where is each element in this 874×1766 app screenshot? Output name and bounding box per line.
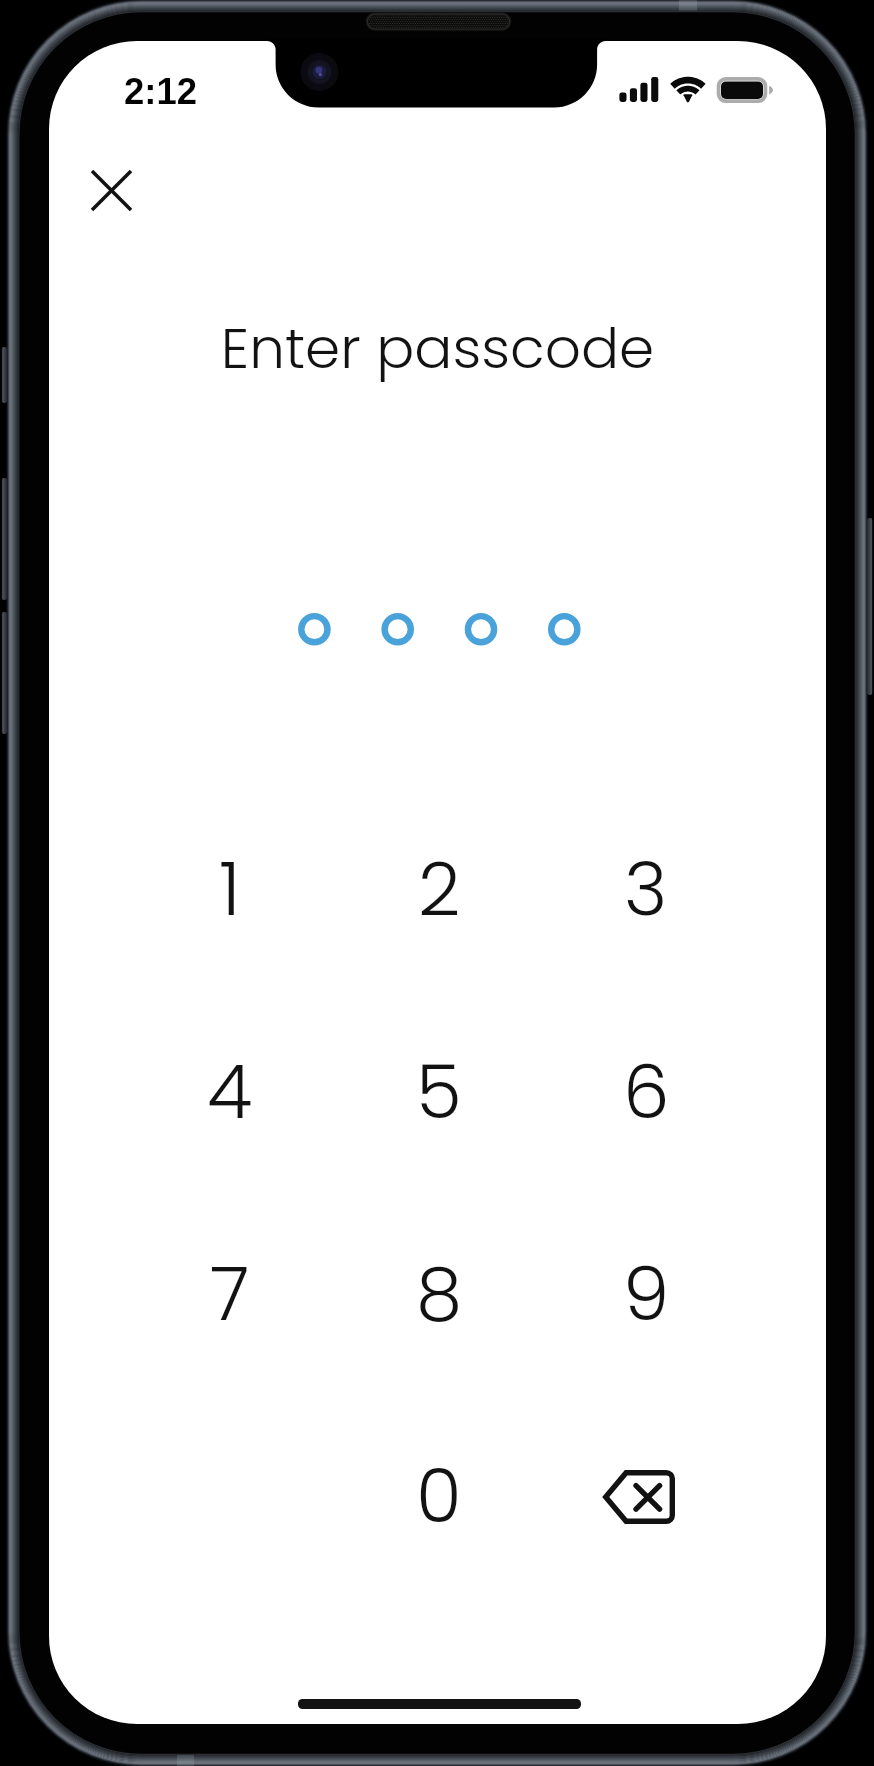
button[interactable]: 7 [164, 1228, 296, 1360]
staticText: 2 [418, 837, 461, 941]
button[interactable]: 3 [580, 823, 712, 955]
button[interactable]: Backspace [580, 1430, 712, 1562]
staticText: Enter passcode [49, 309, 826, 388]
staticText: 1 [219, 837, 241, 941]
button[interactable]: 6 [580, 1026, 712, 1158]
button[interactable]: 8 [373, 1228, 505, 1360]
button[interactable]: 0 [373, 1430, 505, 1562]
staticText: 9 [623, 1242, 670, 1346]
button[interactable]: 5 [373, 1026, 505, 1158]
button[interactable]: 9 [580, 1228, 712, 1360]
button[interactable]: 4 [164, 1026, 296, 1158]
staticText: 2:12 [124, 71, 198, 112]
staticText: 7 [210, 1242, 250, 1346]
staticText: 5 [416, 1040, 462, 1144]
staticText: 0 [416, 1444, 462, 1548]
button[interactable]: Close [71, 150, 151, 230]
staticText: 3 [624, 837, 668, 941]
staticText: 6 [623, 1040, 670, 1144]
staticText: 4 [207, 1040, 253, 1144]
button[interactable]: 2 [373, 823, 505, 955]
button[interactable]: 1 [164, 823, 296, 955]
staticText: 8 [416, 1242, 463, 1346]
